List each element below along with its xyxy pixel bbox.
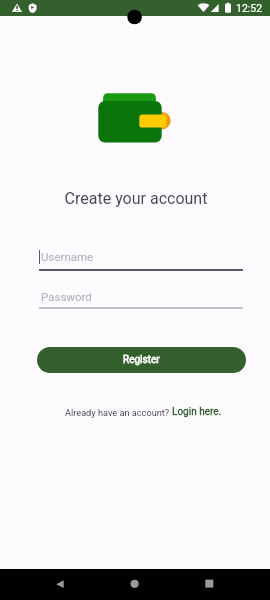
staticText: Register (123, 354, 160, 366)
staticText: Username (41, 250, 94, 263)
button[interactable]: Register (37, 347, 246, 373)
button[interactable]: Home (105, 569, 165, 600)
staticText: Password (41, 290, 92, 303)
staticText: Create your account (1, 189, 270, 208)
button[interactable]: Recent apps (180, 569, 240, 600)
staticText: 12:52 (236, 2, 263, 14)
button[interactable]: Username (39, 246, 243, 271)
staticText: Already have an account? (65, 407, 172, 418)
button[interactable]: Password (39, 286, 243, 311)
button[interactable]: Back (30, 569, 90, 600)
staticText: Login here. (172, 406, 222, 418)
button[interactable]: Login here. (172, 406, 222, 418)
